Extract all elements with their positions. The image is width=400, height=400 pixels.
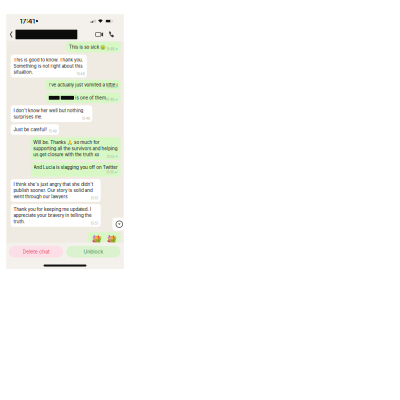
- button[interactable]: Back: [6, 60, 36, 102]
- staticText: This is good to know. Thank you. Somethi…: [29, 157, 261, 216]
- staticText: 17:41: [50, 23, 101, 50]
- button[interactable]: Contact name: [36, 59, 242, 103]
